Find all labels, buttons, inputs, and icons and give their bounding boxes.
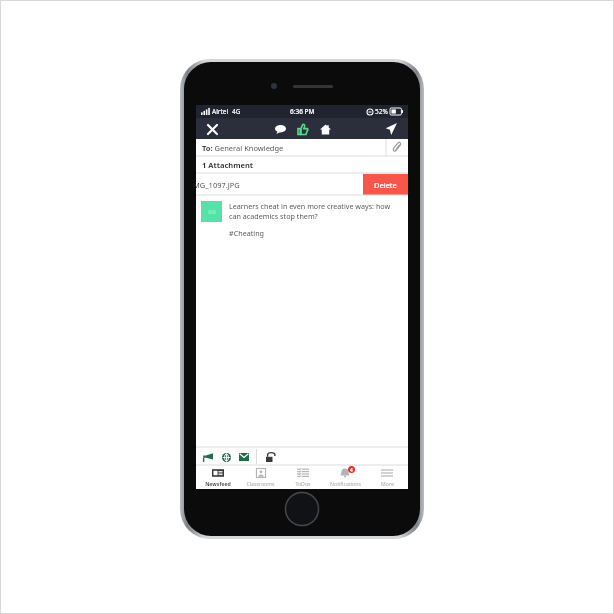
button[interactable]: Public: [218, 449, 234, 465]
staticText: Notifications: [330, 480, 361, 487]
button[interactable]: Announcement: [200, 449, 216, 465]
button[interactable]: To: General Knowledge: [196, 139, 408, 156]
staticText: More: [381, 480, 394, 487]
staticText: 6:36 PM: [290, 107, 315, 116]
staticText: Newsfeed: [205, 480, 231, 487]
button[interactable]: Like: [294, 120, 312, 138]
button[interactable]: ToDos: [282, 466, 324, 489]
staticText: To: General Knowledge: [202, 143, 386, 153]
staticText: BB: [208, 208, 216, 216]
staticText: Delete: [374, 180, 397, 190]
staticText: 4: [350, 467, 353, 473]
button[interactable]: Message: [236, 449, 252, 465]
staticText: Classrooms: [246, 480, 275, 487]
button[interactable]: Send: [382, 120, 400, 138]
staticText: ToDos: [295, 480, 311, 487]
staticText: Learners cheat in even more creative way…: [229, 201, 402, 221]
button[interactable]: 4: [324, 466, 366, 489]
staticText: Airtel: [212, 107, 229, 116]
button[interactable]: Classrooms: [239, 466, 282, 489]
staticText: 1 Attachment: [202, 160, 254, 170]
button[interactable]: BB: [201, 201, 402, 238]
button[interactable]: Delete: [363, 174, 408, 195]
button[interactable]: Home: [316, 120, 334, 138]
button[interactable]: Close: [204, 121, 220, 137]
button[interactable]: Attach file: [386, 139, 408, 156]
button[interactable]: Unlocked: [262, 449, 278, 465]
staticText: 4G: [232, 107, 241, 116]
staticText: #Cheating: [229, 228, 265, 238]
staticText: MG_1097.JPG: [193, 180, 240, 190]
button[interactable]: More: [366, 466, 408, 489]
button[interactable]: Newsfeed: [196, 466, 239, 489]
staticText: 52%: [375, 107, 388, 116]
button[interactable]: Comments: [271, 120, 289, 138]
